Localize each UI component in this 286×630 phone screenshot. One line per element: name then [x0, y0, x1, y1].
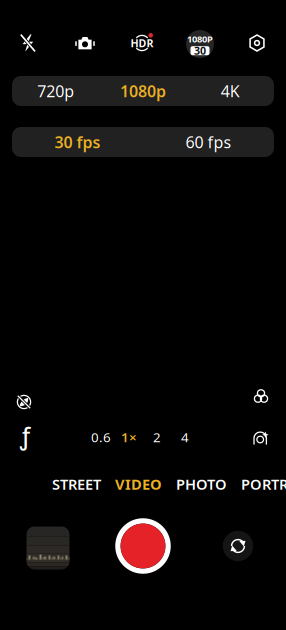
- button[interactable]: Flash off: [6, 22, 50, 64]
- button[interactable]: Record: [115, 518, 171, 574]
- button[interactable]: 4: [171, 425, 199, 449]
- button[interactable]: Resolution and frame rate: [178, 23, 222, 65]
- staticText: 2: [153, 428, 161, 446]
- button[interactable]: Video stabilisation: [63, 22, 107, 64]
- button[interactable]: 1×: [115, 425, 143, 449]
- staticText: 720p: [37, 80, 74, 102]
- button[interactable]: STREET: [52, 474, 101, 494]
- staticText: 0.6: [91, 428, 111, 446]
- button[interactable]: Beauty off: [7, 387, 41, 417]
- button[interactable]: Aperture: [8, 421, 42, 451]
- button[interactable]: 4K: [187, 76, 274, 106]
- button[interactable]: 2: [143, 425, 171, 449]
- staticText: 1×: [121, 428, 137, 446]
- button[interactable]: Switch camera: [221, 529, 255, 563]
- staticText: ƒ: [20, 421, 30, 451]
- staticText: 1080p: [120, 80, 166, 102]
- button[interactable]: Gallery: [26, 526, 69, 569]
- button[interactable]: Colour filters: [244, 381, 278, 411]
- button[interactable]: 720p: [12, 76, 99, 106]
- button[interactable]: PORTRAIT: [241, 474, 286, 494]
- staticText: STREET: [52, 474, 101, 494]
- staticText: PORTRAIT: [241, 474, 286, 494]
- button[interactable]: PHOTO: [176, 474, 227, 494]
- staticText: 4: [181, 428, 189, 446]
- staticText: 30: [194, 44, 206, 58]
- staticText: 30 fps: [54, 131, 100, 153]
- button[interactable]: 0.6: [87, 425, 115, 449]
- button[interactable]: HDR: [120, 22, 164, 64]
- button[interactable]: 1080p: [99, 76, 187, 106]
- staticText: 4K: [221, 80, 240, 102]
- button[interactable]: VIDEO: [115, 474, 162, 494]
- button[interactable]: 30 fps: [12, 127, 143, 157]
- staticText: PHOTO: [176, 474, 227, 494]
- staticText: VIDEO: [115, 474, 162, 494]
- staticText: 1080P: [187, 33, 213, 45]
- button[interactable]: Settings: [235, 22, 279, 64]
- button[interactable]: 60 fps: [143, 127, 274, 157]
- button[interactable]: AI camera: [244, 423, 278, 453]
- staticText: 60 fps: [185, 131, 231, 153]
- staticText: HDR: [130, 36, 153, 50]
